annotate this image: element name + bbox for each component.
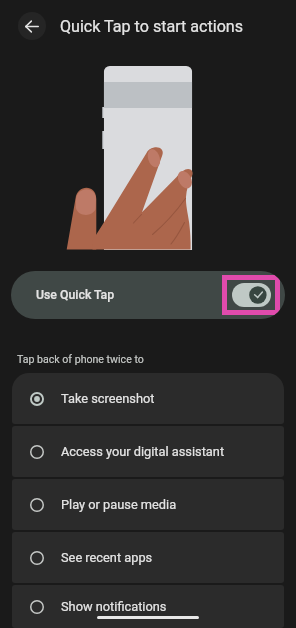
button[interactable]: Back: [18, 12, 46, 40]
staticText: Use Quick Tap: [36, 288, 115, 302]
staticText: Play or pause media: [61, 497, 177, 512]
button[interactable]: Take screenshot: [12, 373, 284, 424]
button[interactable]: Use Quick Tap: [11, 271, 285, 319]
staticText: Access your digital assistant: [61, 444, 225, 459]
button[interactable]: Play or pause media: [12, 479, 284, 530]
button[interactable]: Access your digital assistant: [12, 426, 284, 477]
button[interactable]: See recent apps: [12, 532, 284, 583]
staticText: Take screenshot: [61, 391, 155, 406]
staticText: See recent apps: [61, 550, 153, 565]
staticText: Show notifications: [61, 599, 167, 614]
staticText: Tap back of phone twice to: [17, 353, 144, 365]
button[interactable]: Show notifications: [12, 585, 284, 628]
staticText: Quick Tap to start actions: [60, 17, 244, 36]
